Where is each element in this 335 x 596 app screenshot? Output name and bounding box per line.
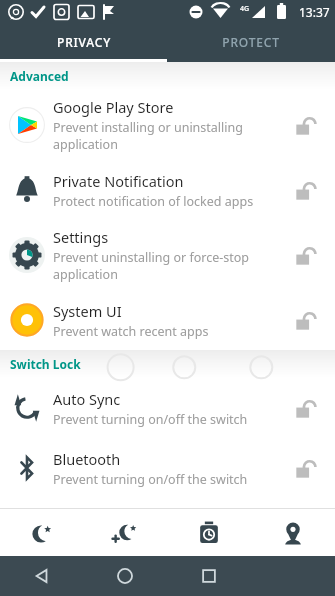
staticText: 13:37 [299, 4, 330, 20]
button[interactable]: Auto Sync [0, 378, 335, 438]
button[interactable]: System UI [0, 290, 335, 350]
staticText: Auto Sync [53, 389, 121, 409]
button[interactable]: Toggle lock for Bluetooth [277, 438, 335, 498]
button[interactable]: Google Play Store [0, 90, 335, 160]
button[interactable]: Back [0, 556, 83, 596]
button[interactable]: Toggle lock for Auto Sync [277, 378, 335, 438]
staticText: 4G [240, 4, 250, 14]
button[interactable]: Recent apps [167, 556, 251, 596]
staticText: Bluetooth [53, 449, 121, 469]
button[interactable]: Add night mode [83, 509, 167, 556]
button[interactable]: Toggle lock for Private Notification [277, 160, 335, 220]
button[interactable]: Scheduler [167, 509, 251, 556]
button[interactable]: Locations [251, 509, 335, 556]
staticText: Prevent turning on/off the switch [53, 471, 248, 488]
staticText: Settings [53, 227, 109, 247]
staticText: PRIVACY [57, 34, 111, 50]
button[interactable]: Toggle lock for Google Play Store [277, 90, 335, 160]
button[interactable]: Bluetooth [0, 438, 335, 498]
button[interactable]: PRIVACY [0, 24, 167, 59]
button[interactable]: Toggle lock for Settings [277, 220, 335, 290]
button[interactable]: Settings [0, 220, 335, 290]
button[interactable]: Home [83, 556, 167, 596]
button[interactable]: PROTECT [167, 24, 335, 59]
staticText: Switch Lock [10, 356, 81, 372]
staticText: Advanced [10, 68, 69, 84]
staticText: Prevent turning on/off the switch [53, 411, 248, 428]
staticText: Protect notification of locked apps [53, 193, 254, 210]
staticText: application [53, 136, 118, 153]
staticText: application [53, 266, 118, 283]
staticText: PROTECT [222, 34, 280, 50]
button[interactable]: Toggle lock for System UI [277, 290, 335, 350]
staticText: Prevent installing or uninstalling [53, 119, 243, 136]
button[interactable]: Night mode [0, 509, 83, 556]
staticText: Google Play Store [53, 97, 174, 117]
staticText: System UI [53, 301, 122, 321]
staticText: Prevent watch recent apps [53, 323, 209, 340]
button[interactable]: Private Notification [0, 160, 335, 220]
staticText: Private Notification [53, 171, 184, 191]
staticText: Prevent uninstalling or force-stop [53, 249, 249, 266]
